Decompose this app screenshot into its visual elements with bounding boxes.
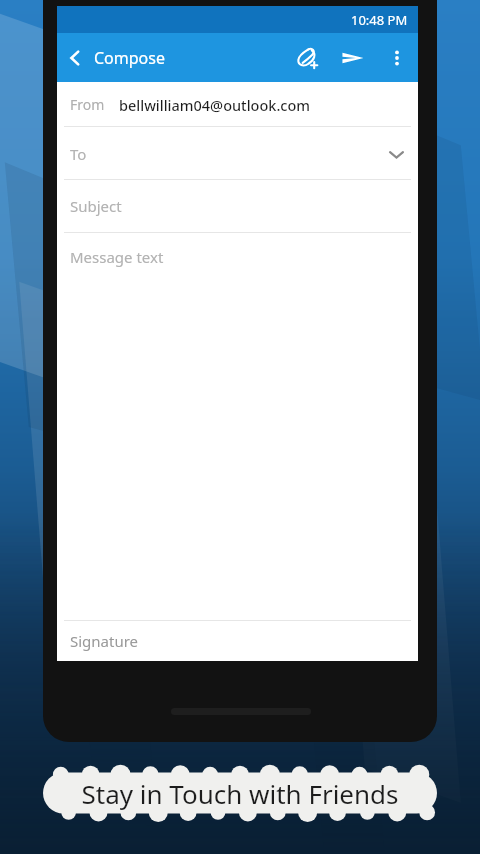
button[interactable]: More options [376, 37, 418, 79]
button[interactable]: Attach file [284, 35, 330, 81]
button[interactable]: To [57, 127, 418, 180]
button[interactable]: Send [330, 35, 376, 81]
button[interactable]: Compose [57, 41, 177, 75]
staticText: From [70, 95, 105, 114]
staticText: To [70, 144, 87, 164]
button[interactable]: From [57, 82, 418, 127]
staticText: Stay in Touch with Friends [81, 776, 399, 811]
staticText: Subject [70, 196, 418, 233]
button[interactable]: Subject [57, 180, 418, 233]
button[interactable]: Expand recipients [374, 132, 418, 176]
staticText: 10:48 PM [351, 11, 408, 29]
staticText: Message text [70, 247, 164, 267]
staticText: Signature [70, 631, 139, 651]
staticText: Compose [94, 47, 165, 69]
staticText: bellwilliam04@outlook.com [119, 95, 311, 115]
